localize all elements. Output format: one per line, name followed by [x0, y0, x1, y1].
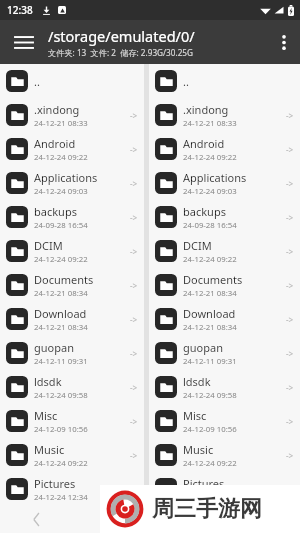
staticText: guopan — [34, 340, 74, 355]
button[interactable]: Documents — [149, 268, 300, 302]
staticText: Android — [183, 136, 225, 151]
staticText: 24-12-21 08:33 — [34, 118, 88, 129]
button[interactable]: Applications — [0, 166, 144, 200]
staticText: Pictures — [183, 476, 225, 491]
staticText: Pictures — [34, 476, 76, 491]
staticText: 24-12-21 08:34 — [34, 322, 88, 333]
button[interactable]: ldsdk — [0, 370, 144, 404]
staticText: Documents — [183, 272, 243, 287]
staticText: Applications — [183, 170, 247, 185]
staticText: -> — [130, 246, 138, 257]
staticText: -> — [130, 416, 138, 427]
button[interactable]: Next page — [72, 506, 144, 533]
staticText: 24-12-24 09:03 — [34, 186, 88, 197]
button[interactable]: DCIM — [149, 234, 300, 268]
staticText: -> — [286, 178, 294, 189]
button[interactable]: guopan — [149, 336, 300, 370]
button[interactable]: .xindong — [149, 98, 300, 132]
staticText: Android — [34, 136, 76, 151]
button[interactable]: Misc — [0, 404, 144, 438]
staticText: guopan — [183, 340, 223, 355]
staticText: Applications — [34, 170, 98, 185]
staticText: 24-12-24 09:22 — [183, 152, 237, 163]
button[interactable]: Menu — [0, 20, 48, 64]
staticText: .xindong — [34, 102, 80, 117]
button[interactable]: Pictures — [149, 472, 300, 506]
staticText: 24-12-11 09:31 — [34, 356, 88, 367]
staticText: 12:38 — [7, 3, 33, 17]
button[interactable]: guopan — [0, 336, 144, 370]
staticText: -> — [286, 144, 294, 155]
staticText: -> — [130, 280, 138, 291]
button[interactable]: More options — [268, 20, 300, 64]
staticText: 24-12-09 10:56 — [34, 424, 88, 435]
staticText: 24-12-21 08:34 — [34, 288, 88, 299]
staticText: 24-12-24 09:58 — [183, 390, 237, 401]
button[interactable]: Documents — [0, 268, 144, 302]
button[interactable]: Pictures — [0, 472, 144, 506]
staticText: 24-12-24 09:58 — [34, 390, 88, 401]
staticText: 24-12-24 09:22 — [34, 458, 88, 469]
staticText: 周三手游网 — [152, 495, 262, 523]
staticText: Download — [183, 306, 236, 321]
staticText: 文件夹: 13 文件: 2 储存: 2.93G/30.25G — [48, 47, 193, 58]
button[interactable]: DCIM — [0, 234, 144, 268]
staticText: .xindong — [183, 102, 229, 117]
staticText: Music — [183, 442, 214, 457]
staticText: 24-12-24 12:34 — [34, 492, 88, 503]
staticText: Documents — [34, 272, 94, 287]
staticText: -> — [286, 348, 294, 359]
staticText: DCIM — [34, 238, 63, 253]
staticText: DCIM — [183, 238, 212, 253]
staticText: -> — [130, 212, 138, 223]
staticText: -> — [130, 110, 138, 121]
button[interactable]: backups — [0, 200, 144, 234]
staticText: 24-12-21 08:33 — [183, 118, 237, 129]
staticText: -> — [130, 450, 138, 461]
staticText: 24-12-09 10:56 — [183, 424, 237, 435]
button[interactable]: .xindong — [0, 98, 144, 132]
button[interactable]: Applications — [149, 166, 300, 200]
staticText: 24-12-21 08:34 — [183, 288, 237, 299]
staticText: ldsdk — [34, 374, 62, 389]
button[interactable]: Download — [149, 302, 300, 336]
staticText: ldsdk — [183, 374, 211, 389]
staticText: -> — [286, 212, 294, 223]
staticText: -> — [130, 314, 138, 325]
staticText: .. — [34, 74, 40, 89]
staticText: 24-12-24 09:03 — [183, 186, 237, 197]
button[interactable]: .. — [0, 64, 144, 98]
staticText: 24-09-28 16:54 — [34, 220, 88, 231]
staticText: 24-12-11 09:31 — [183, 356, 237, 367]
button[interactable]: Misc — [149, 404, 300, 438]
staticText: .. — [183, 74, 189, 89]
button[interactable]: .. — [149, 64, 300, 98]
button[interactable]: Android — [0, 132, 144, 166]
staticText: -> — [130, 144, 138, 155]
staticText: 24-09-28 16:54 — [183, 220, 237, 231]
staticText: -> — [286, 382, 294, 393]
staticText: Download — [34, 306, 87, 321]
staticText: 24-12-21 08:34 — [183, 322, 237, 333]
staticText: 24-12-24 09:22 — [183, 254, 237, 265]
button[interactable]: ldsdk — [149, 370, 300, 404]
button[interactable]: backups — [149, 200, 300, 234]
staticText: -> — [286, 280, 294, 291]
staticText: -> — [286, 246, 294, 257]
staticText: -> — [286, 450, 294, 461]
staticText: 24-12-24 09:22 — [183, 458, 237, 469]
staticText: backups — [34, 204, 77, 219]
button[interactable]: Android — [149, 132, 300, 166]
staticText: -> — [130, 178, 138, 189]
staticText: backups — [183, 204, 226, 219]
staticText: 24-12-24 09:22 — [34, 152, 88, 163]
button[interactable]: Music — [0, 438, 144, 472]
staticText: Misc — [183, 408, 207, 423]
button[interactable]: Previous page — [0, 506, 72, 533]
staticText: Music — [34, 442, 65, 457]
button[interactable]: Download — [0, 302, 144, 336]
staticText: /storage/emulated/0/ — [48, 26, 195, 46]
button[interactable]: Music — [149, 438, 300, 472]
staticText: -> — [286, 416, 294, 427]
